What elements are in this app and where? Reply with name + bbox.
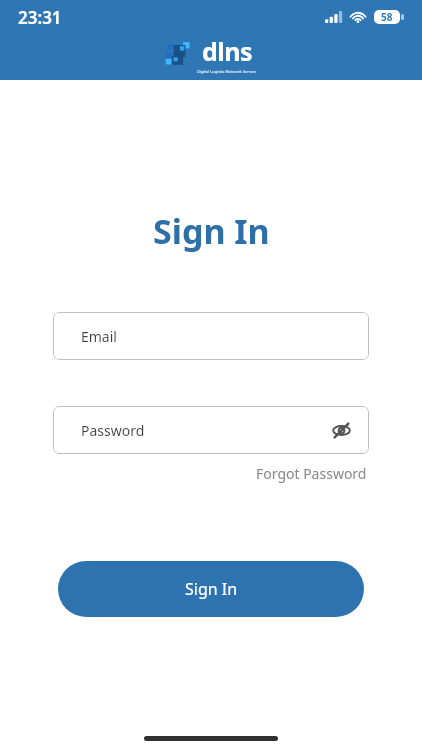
button[interactable]: Password bbox=[53, 406, 369, 454]
button[interactable]: Sign In bbox=[58, 561, 364, 617]
staticText: 58 bbox=[381, 10, 393, 24]
staticText: dlns bbox=[202, 34, 253, 68]
staticText: Forgot Password bbox=[256, 464, 367, 483]
staticText: Digital Logistic Network Service bbox=[197, 69, 257, 74]
staticText: Email bbox=[81, 327, 117, 346]
button[interactable]: Show password bbox=[325, 414, 357, 446]
staticText: 23:31 bbox=[18, 6, 62, 29]
button[interactable]: Email bbox=[53, 312, 369, 360]
button[interactable]: Forgot Password bbox=[254, 462, 369, 485]
staticText: Sign In bbox=[185, 578, 238, 600]
staticText: Sign In bbox=[153, 208, 270, 254]
staticText: Password bbox=[81, 421, 145, 440]
